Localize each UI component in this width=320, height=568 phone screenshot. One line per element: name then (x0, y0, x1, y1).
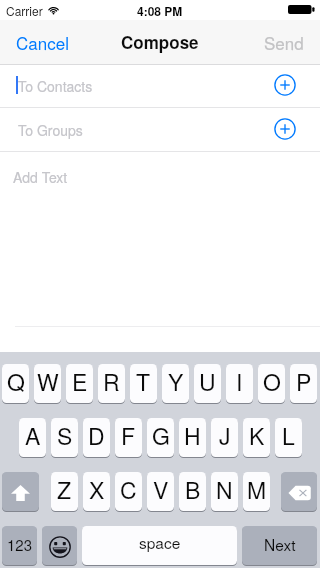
button[interactable]: P (290, 364, 317, 403)
button[interactable]: L (275, 418, 302, 457)
staticText: U (199, 365, 216, 398)
button[interactable]: C (115, 472, 142, 511)
staticText: W (37, 365, 59, 398)
button[interactable]: Z (51, 472, 78, 511)
staticText: Q (7, 365, 25, 398)
button[interactable]: Add recipient (274, 118, 296, 140)
button[interactable]: V (147, 472, 174, 511)
staticText: space (139, 531, 181, 553)
button[interactable]: To Groups (0, 108, 320, 151)
button[interactable]: S (51, 418, 78, 457)
staticText: 4:08 PM (137, 2, 183, 19)
button[interactable]: I (226, 364, 253, 403)
staticText: Compose (121, 30, 199, 54)
button[interactable]: Send (252, 22, 320, 64)
button[interactable]: J (211, 418, 238, 457)
staticText: Send (264, 30, 304, 54)
staticText: T (136, 365, 151, 398)
button[interactable]: Cancel (0, 22, 81, 64)
button[interactable]: Y (162, 364, 189, 403)
staticText: To Contacts (18, 76, 93, 96)
staticText: H (184, 419, 201, 452)
staticText: Next (264, 533, 296, 555)
button[interactable]: O (258, 364, 285, 403)
staticText: A (25, 419, 41, 452)
button[interactable]: N (211, 472, 238, 511)
staticText: P (296, 365, 312, 398)
button[interactable]: F (115, 418, 142, 457)
button[interactable]: G (147, 418, 174, 457)
button[interactable]: Q (2, 364, 29, 403)
staticText: G (152, 419, 170, 452)
button[interactable]: 123 (2, 526, 37, 565)
button[interactable]: Add recipient (274, 74, 296, 96)
button[interactable]: H (179, 418, 206, 457)
staticText: K (249, 419, 265, 452)
staticText: D (88, 419, 105, 452)
button[interactable]: D (83, 418, 110, 457)
button[interactable]: Add Text (0, 152, 320, 327)
button[interactable]: R (98, 364, 125, 403)
staticText: N (216, 473, 233, 506)
staticText: 123 (7, 534, 33, 555)
button[interactable]: T (130, 364, 157, 403)
staticText: Y (168, 365, 184, 398)
staticText: Add Text (13, 167, 68, 187)
button[interactable]: Emoji (42, 526, 77, 565)
staticText: X (89, 473, 105, 506)
staticText: M (247, 473, 267, 506)
staticText: O (263, 365, 281, 398)
button[interactable]: To Contacts (0, 65, 320, 107)
staticText: C (120, 473, 137, 506)
staticText: L (282, 419, 295, 452)
button[interactable]: B (179, 472, 206, 511)
staticText: Carrier (6, 2, 43, 19)
staticText: S (57, 419, 73, 452)
staticText: Cancel (16, 30, 69, 54)
button[interactable]: M (243, 472, 270, 511)
staticText: Z (57, 473, 72, 506)
staticText: B (185, 473, 201, 506)
staticText: F (121, 419, 136, 452)
staticText: V (153, 473, 169, 506)
staticText: To Groups (18, 120, 83, 140)
button[interactable]: space (82, 526, 237, 565)
button[interactable]: Shift (2, 472, 39, 511)
button[interactable]: Next (242, 526, 317, 565)
button[interactable]: Delete (281, 472, 317, 511)
staticText: I (236, 365, 243, 398)
button[interactable]: U (194, 364, 221, 403)
button[interactable]: X (83, 472, 110, 511)
button[interactable]: E (66, 364, 93, 403)
staticText: E (72, 365, 88, 398)
staticText: J (219, 419, 231, 452)
button[interactable]: W (34, 364, 61, 403)
button[interactable]: K (243, 418, 270, 457)
button[interactable]: A (19, 418, 46, 457)
staticText: R (103, 365, 120, 398)
